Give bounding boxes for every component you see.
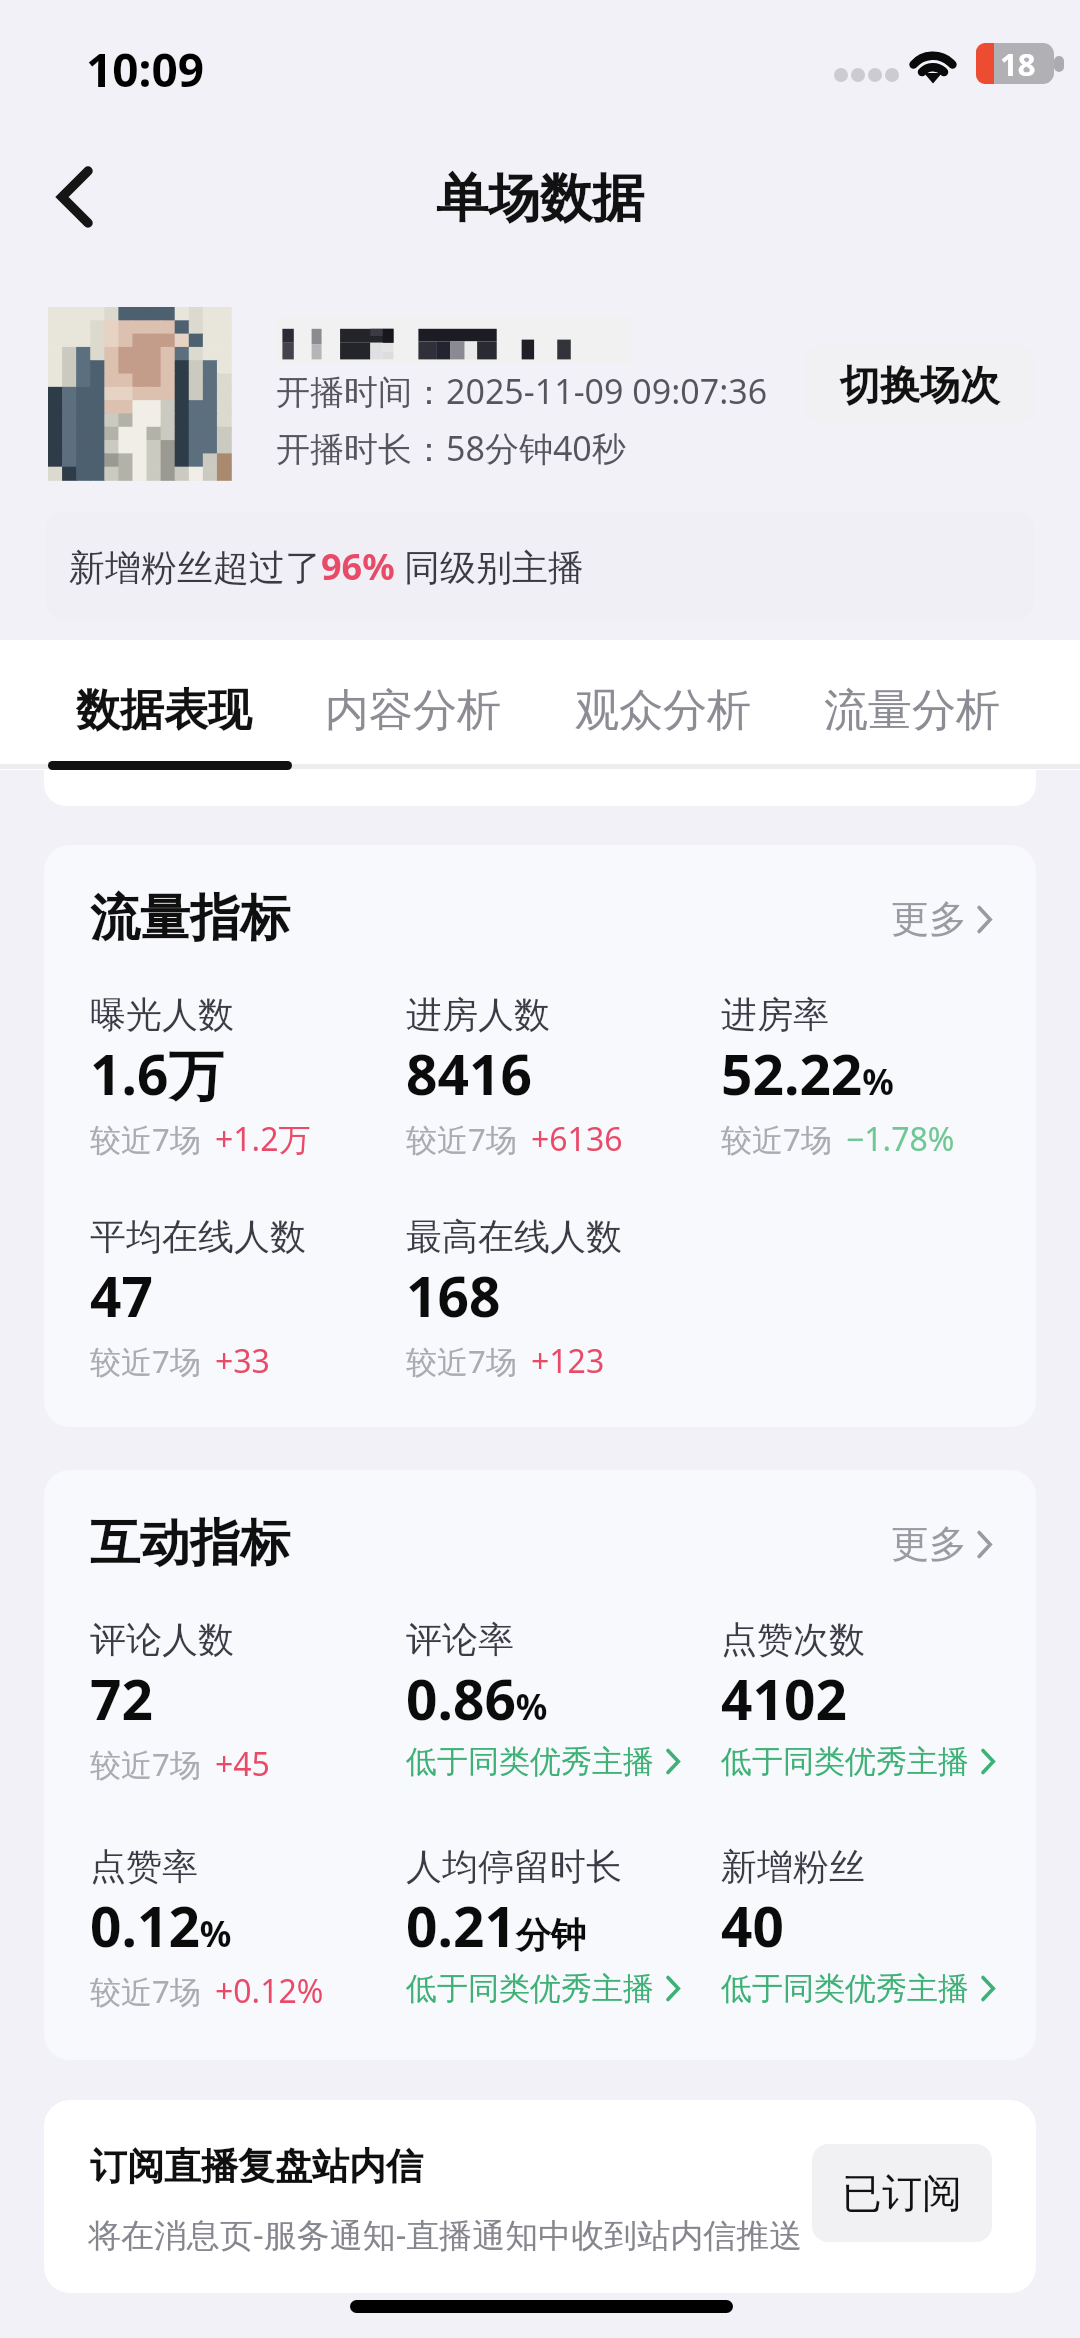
- staticText: −1.78%: [846, 1117, 955, 1161]
- staticText: +123: [531, 1339, 605, 1383]
- staticText: 点赞次数: [721, 1617, 865, 1661]
- button[interactable]: 低于同类优秀主播: [406, 1969, 680, 2008]
- staticText: 18: [1000, 43, 1036, 84]
- staticText: 开播时长：58分钟40秒: [276, 425, 626, 471]
- staticText: 已订阅: [842, 2168, 962, 2218]
- staticText: 单场数据: [436, 166, 644, 232]
- staticText: 切换场次: [840, 360, 1000, 410]
- staticText: 流量指标: [90, 887, 290, 950]
- staticText: 4102: [721, 1661, 847, 1736]
- staticText: 评论人数: [90, 1617, 234, 1661]
- staticText: +45: [215, 1742, 270, 1786]
- staticText: 低于同类优秀主播: [721, 1969, 969, 2008]
- button[interactable]: 流量分析: [822, 655, 1002, 765]
- staticText: 47: [90, 1258, 153, 1333]
- staticText: 流量分析: [824, 683, 1000, 738]
- staticText: 互动指标: [90, 1512, 290, 1575]
- staticText: +6136: [531, 1117, 623, 1161]
- staticText: 曝光人数: [90, 992, 234, 1036]
- staticText: 72: [90, 1661, 153, 1736]
- staticText: +0.12%: [215, 1969, 324, 2013]
- staticText: 新增粉丝超过了96% 同级别主播: [69, 542, 585, 591]
- staticText: 较近7场: [406, 1340, 517, 1382]
- staticText: 数据表现: [76, 683, 252, 738]
- staticText: 较近7场: [721, 1118, 832, 1160]
- staticText: 1.6万: [90, 1036, 224, 1111]
- staticText: 进房人数: [406, 992, 550, 1036]
- button[interactable]: 观众分析: [573, 655, 753, 765]
- staticText: 低于同类优秀主播: [406, 1742, 654, 1781]
- staticText: 将在消息页-服务通知-直播通知中收到站内信推送: [88, 2212, 848, 2257]
- staticText: 更多: [891, 1520, 967, 1568]
- button[interactable]: 内容分析: [323, 655, 503, 765]
- staticText: 最高在线人数: [406, 1214, 622, 1258]
- button[interactable]: 已订阅: [812, 2144, 992, 2242]
- staticText: 内容分析: [325, 683, 501, 738]
- staticText: 平均在线人数: [90, 1214, 306, 1258]
- button[interactable]: 切换场次: [805, 345, 1035, 424]
- staticText: 0.12%: [90, 1888, 232, 1963]
- staticText: 开播时间：2025-11-09 09:07:36: [276, 368, 768, 414]
- button[interactable]: 低于同类优秀主播: [406, 1742, 680, 1781]
- staticText: 8416: [406, 1036, 532, 1111]
- button[interactable]: 更多: [891, 1520, 992, 1568]
- staticText: 点赞率: [90, 1844, 198, 1888]
- staticText: 较近7场: [90, 1743, 201, 1785]
- staticText: 人均停留时长: [406, 1844, 622, 1888]
- staticText: 订阅直播复盘站内信: [90, 2143, 423, 2190]
- staticText: 低于同类优秀主播: [721, 1742, 969, 1781]
- staticText: 新增粉丝: [721, 1844, 865, 1888]
- staticText: 较近7场: [90, 1970, 201, 2012]
- staticText: 较近7场: [90, 1118, 201, 1160]
- staticText: 52.22%: [721, 1036, 894, 1111]
- staticText: 更多: [891, 895, 967, 943]
- button[interactable]: 低于同类优秀主播: [721, 1742, 995, 1781]
- staticText: 评论率: [406, 1617, 514, 1661]
- button[interactable]: Back: [22, 143, 132, 253]
- staticText: 40: [721, 1888, 784, 1963]
- button[interactable]: 更多: [891, 895, 992, 943]
- staticText: +1.2万: [215, 1117, 311, 1161]
- staticText: 168: [406, 1258, 501, 1333]
- staticText: 10:09: [86, 38, 205, 101]
- staticText: 观众分析: [575, 683, 751, 738]
- staticText: +33: [215, 1339, 270, 1383]
- button[interactable]: 订阅直播复盘站内信: [44, 2100, 1036, 2293]
- staticText: 0.86%: [406, 1661, 548, 1736]
- button[interactable]: 低于同类优秀主播: [721, 1969, 995, 2008]
- staticText: 进房率: [721, 992, 829, 1036]
- staticText: 低于同类优秀主播: [406, 1969, 654, 2008]
- staticText: 较近7场: [90, 1340, 201, 1382]
- staticText: 0.21分钟: [406, 1888, 586, 1963]
- button[interactable]: 数据表现: [74, 655, 254, 765]
- staticText: 较近7场: [406, 1118, 517, 1160]
